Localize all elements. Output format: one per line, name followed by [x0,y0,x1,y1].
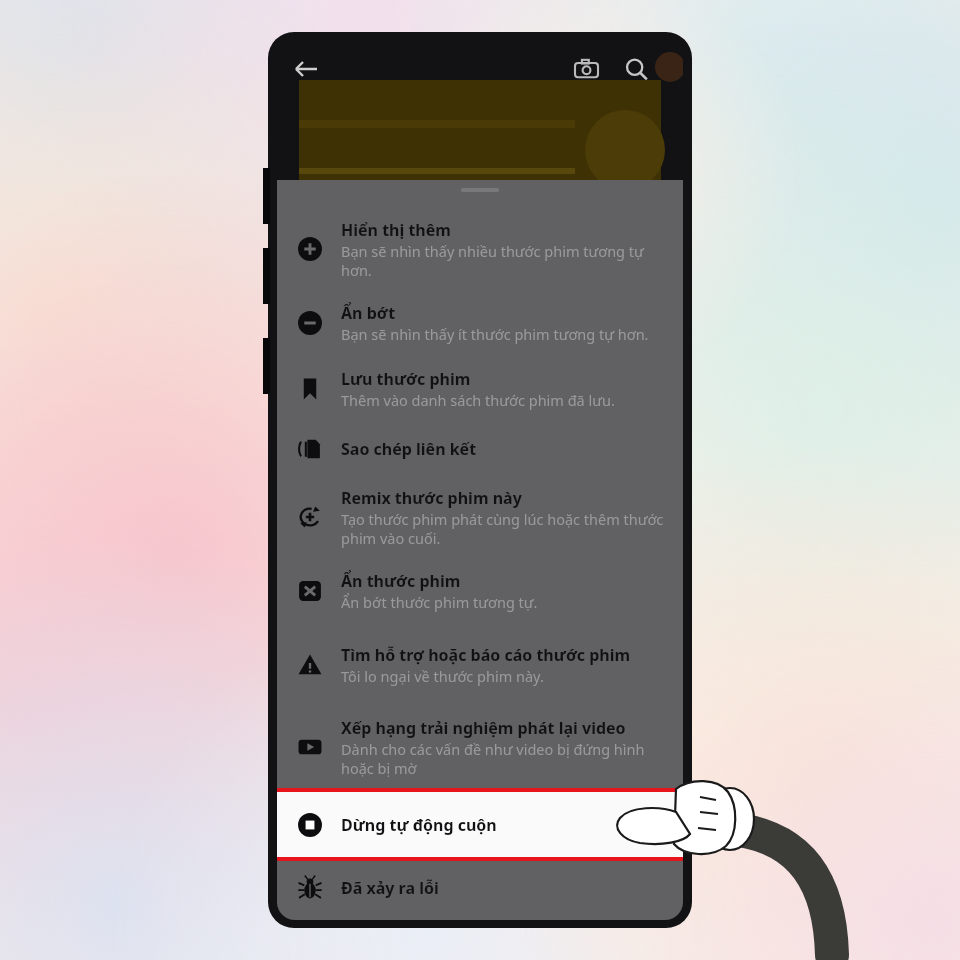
button[interactable]: Back [287,50,325,88]
button[interactable]: Tìm hỗ trợ hoặc báo cáo thước phim [277,624,683,706]
staticText: Hiển thị thêm [341,219,451,241]
staticText: Ẩn thước phim [341,570,461,592]
staticText: Bạn sẽ nhìn thấy nhiều thước phim tương … [341,241,667,280]
button[interactable]: Ẩn bớt [277,290,683,356]
button[interactable]: Camera [567,50,605,88]
button[interactable]: Profile [655,52,683,82]
staticText: Dừng tự động cuộn [341,814,497,836]
button[interactable]: Dừng tự động cuộn [277,788,683,861]
button[interactable]: Xếp hạng trải nghiệm phát lại video [277,706,683,788]
staticText: Sao chép liên kết [341,438,477,460]
staticText: Tạo thước phim phát cùng lúc hoặc thêm t… [341,509,667,548]
button[interactable]: Đã xảy ra lỗi [277,861,683,915]
button[interactable]: Ẩn thước phim [277,558,683,624]
button[interactable]: Lưu thước phim [277,356,683,422]
button[interactable]: Remix thước phim này [277,476,683,558]
staticText: Dành cho các vấn đề như video bị đứng hì… [341,739,667,778]
staticText: Xếp hạng trải nghiệm phát lại video [341,717,626,739]
button[interactable]: Hiển thị thêm [277,208,683,290]
staticText: Ẩn bớt thước phim tương tự. [341,592,538,612]
staticText: Tôi lo ngại về thước phim này. [341,666,544,686]
staticText: Lưu thước phim [341,368,471,390]
button[interactable]: Search [617,50,655,88]
button[interactable]: Sao chép liên kết [277,422,683,476]
staticText: Bạn sẽ nhìn thấy ít thước phim tương tự … [341,324,649,344]
staticText: Thêm vào danh sách thước phim đã lưu. [341,390,615,410]
staticText: Tìm hỗ trợ hoặc báo cáo thước phim [341,644,631,666]
staticText: Đã xảy ra lỗi [341,877,439,899]
staticText: Remix thước phim này [341,487,522,509]
staticText: Ẩn bớt [341,302,396,324]
